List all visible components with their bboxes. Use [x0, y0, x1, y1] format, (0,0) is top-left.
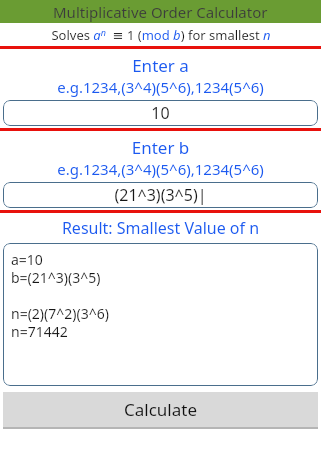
staticText: Result: Smallest Value of n: [0, 217, 321, 239]
button[interactable]: (21^3)(3^5)|: [3, 182, 318, 208]
staticText: Multiplicative Order Calculator: [53, 2, 268, 22]
button[interactable]: 10: [3, 100, 318, 126]
staticText: Calculate: [124, 398, 197, 421]
button[interactable]: Calculate: [3, 392, 318, 427]
staticText: Enter a: [0, 54, 321, 77]
button[interactable]: a=10 b=(21^3)(3^5) n=(2)(7^2)(3^6) n=714…: [3, 243, 318, 386]
staticText: Solves an ≡ 1 (mod b) for smallest n: [51, 26, 271, 44]
staticText: a=10 b=(21^3)(3^5) n=(2)(7^2)(3^6) n=714…: [11, 250, 109, 341]
staticText: (21^3)(3^5)|: [114, 184, 207, 206]
staticText: e.g.1234,(3^4)(5^6),1234(5^6): [0, 159, 321, 179]
staticText: e.g.1234,(3^4)(5^6),1234(5^6): [0, 77, 321, 97]
staticText: Enter b: [0, 136, 321, 159]
staticText: 10: [151, 102, 170, 124]
